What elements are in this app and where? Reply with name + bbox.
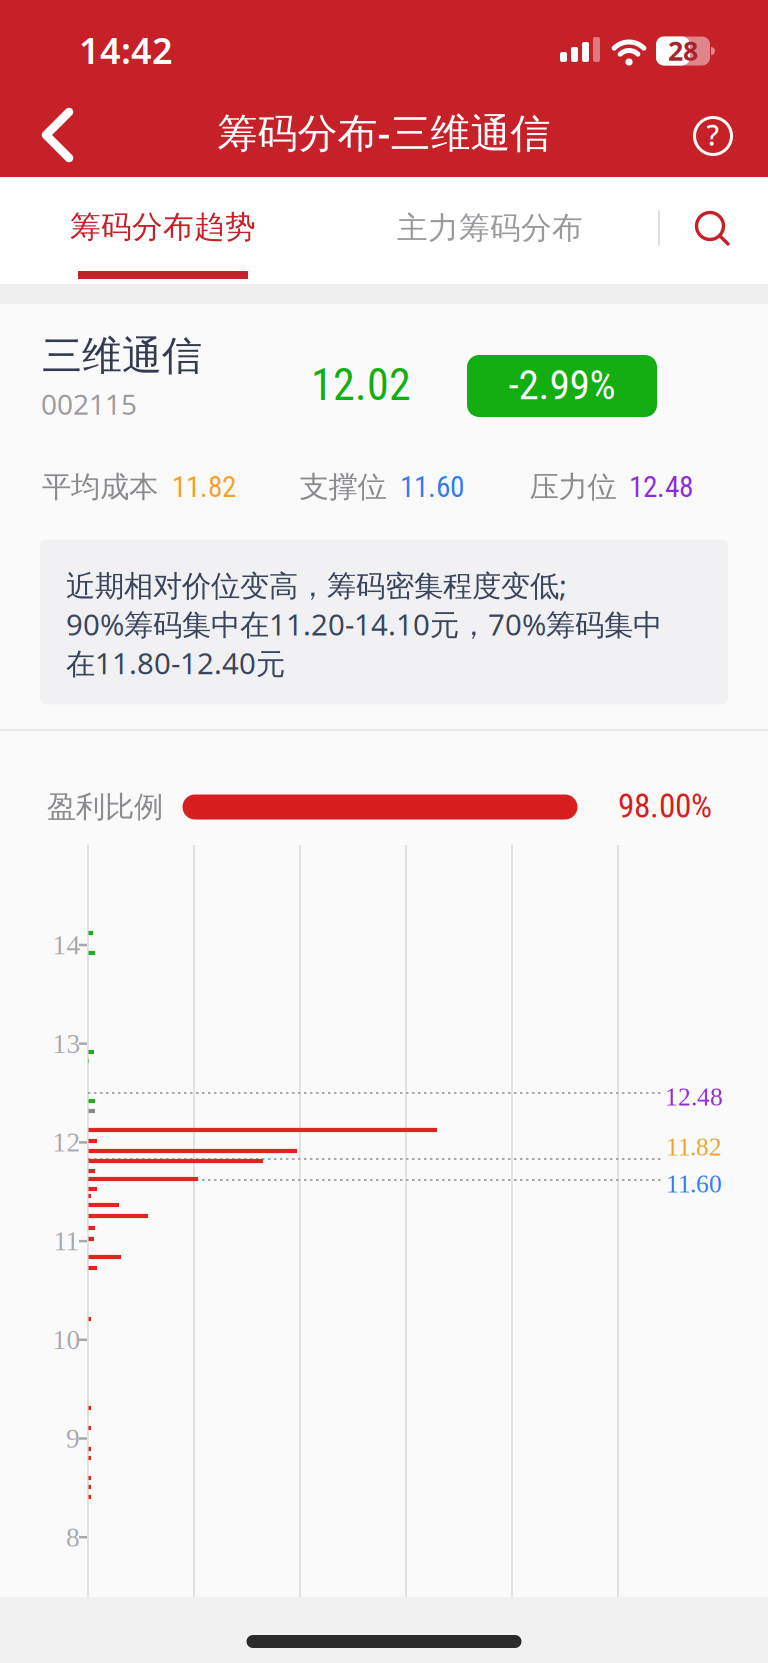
button[interactable]: 主力筹码分布 xyxy=(360,178,620,278)
staticText: 筹码分布-三维通信 xyxy=(217,105,550,158)
staticText: 三维通信 xyxy=(42,331,202,380)
staticText: 压力位 xyxy=(529,469,616,505)
staticText: 11.60 xyxy=(666,1170,722,1198)
button[interactable]: Back xyxy=(39,108,75,162)
staticText: 90%筹码集中在11.20-14.10元，70%筹码集中 xyxy=(66,604,662,643)
staticText: 14 xyxy=(52,930,80,960)
staticText: 筹码分布趋势 xyxy=(70,208,256,246)
staticText: 在11.80-12.40元 xyxy=(66,643,285,682)
button[interactable]: Help xyxy=(693,116,733,156)
staticText: 11.82 xyxy=(666,1133,722,1161)
staticText: 98.00% xyxy=(618,786,712,826)
staticText: 10 xyxy=(52,1325,80,1355)
staticText: 11.60 xyxy=(400,470,464,504)
staticText: 28 xyxy=(668,33,698,68)
staticText: 14:42 xyxy=(79,26,173,74)
staticText: 13 xyxy=(52,1029,80,1059)
staticText: -2.99% xyxy=(508,361,615,409)
staticText: 11.82 xyxy=(172,470,236,504)
staticText: 近期相对价位变高，筹码密集程度变低; xyxy=(66,566,567,605)
staticText: 12.48 xyxy=(629,470,693,504)
staticText: 盈利比例 xyxy=(47,789,163,825)
staticText: 平均成本 xyxy=(42,469,158,505)
staticText: 002115 xyxy=(41,385,137,423)
staticText: 9 xyxy=(66,1423,80,1454)
staticText: ? xyxy=(706,116,719,154)
staticText: 支撑位 xyxy=(299,469,386,505)
staticText: 12.48 xyxy=(665,1083,723,1111)
staticText: 12.02 xyxy=(311,359,411,411)
staticText: 11 xyxy=(53,1226,79,1256)
button[interactable]: Search xyxy=(690,207,734,251)
button[interactable]: 筹码分布趋势 xyxy=(53,178,273,282)
staticText: 主力筹码分布 xyxy=(397,209,583,247)
staticText: 12 xyxy=(52,1127,80,1158)
staticText: 8 xyxy=(66,1522,80,1552)
